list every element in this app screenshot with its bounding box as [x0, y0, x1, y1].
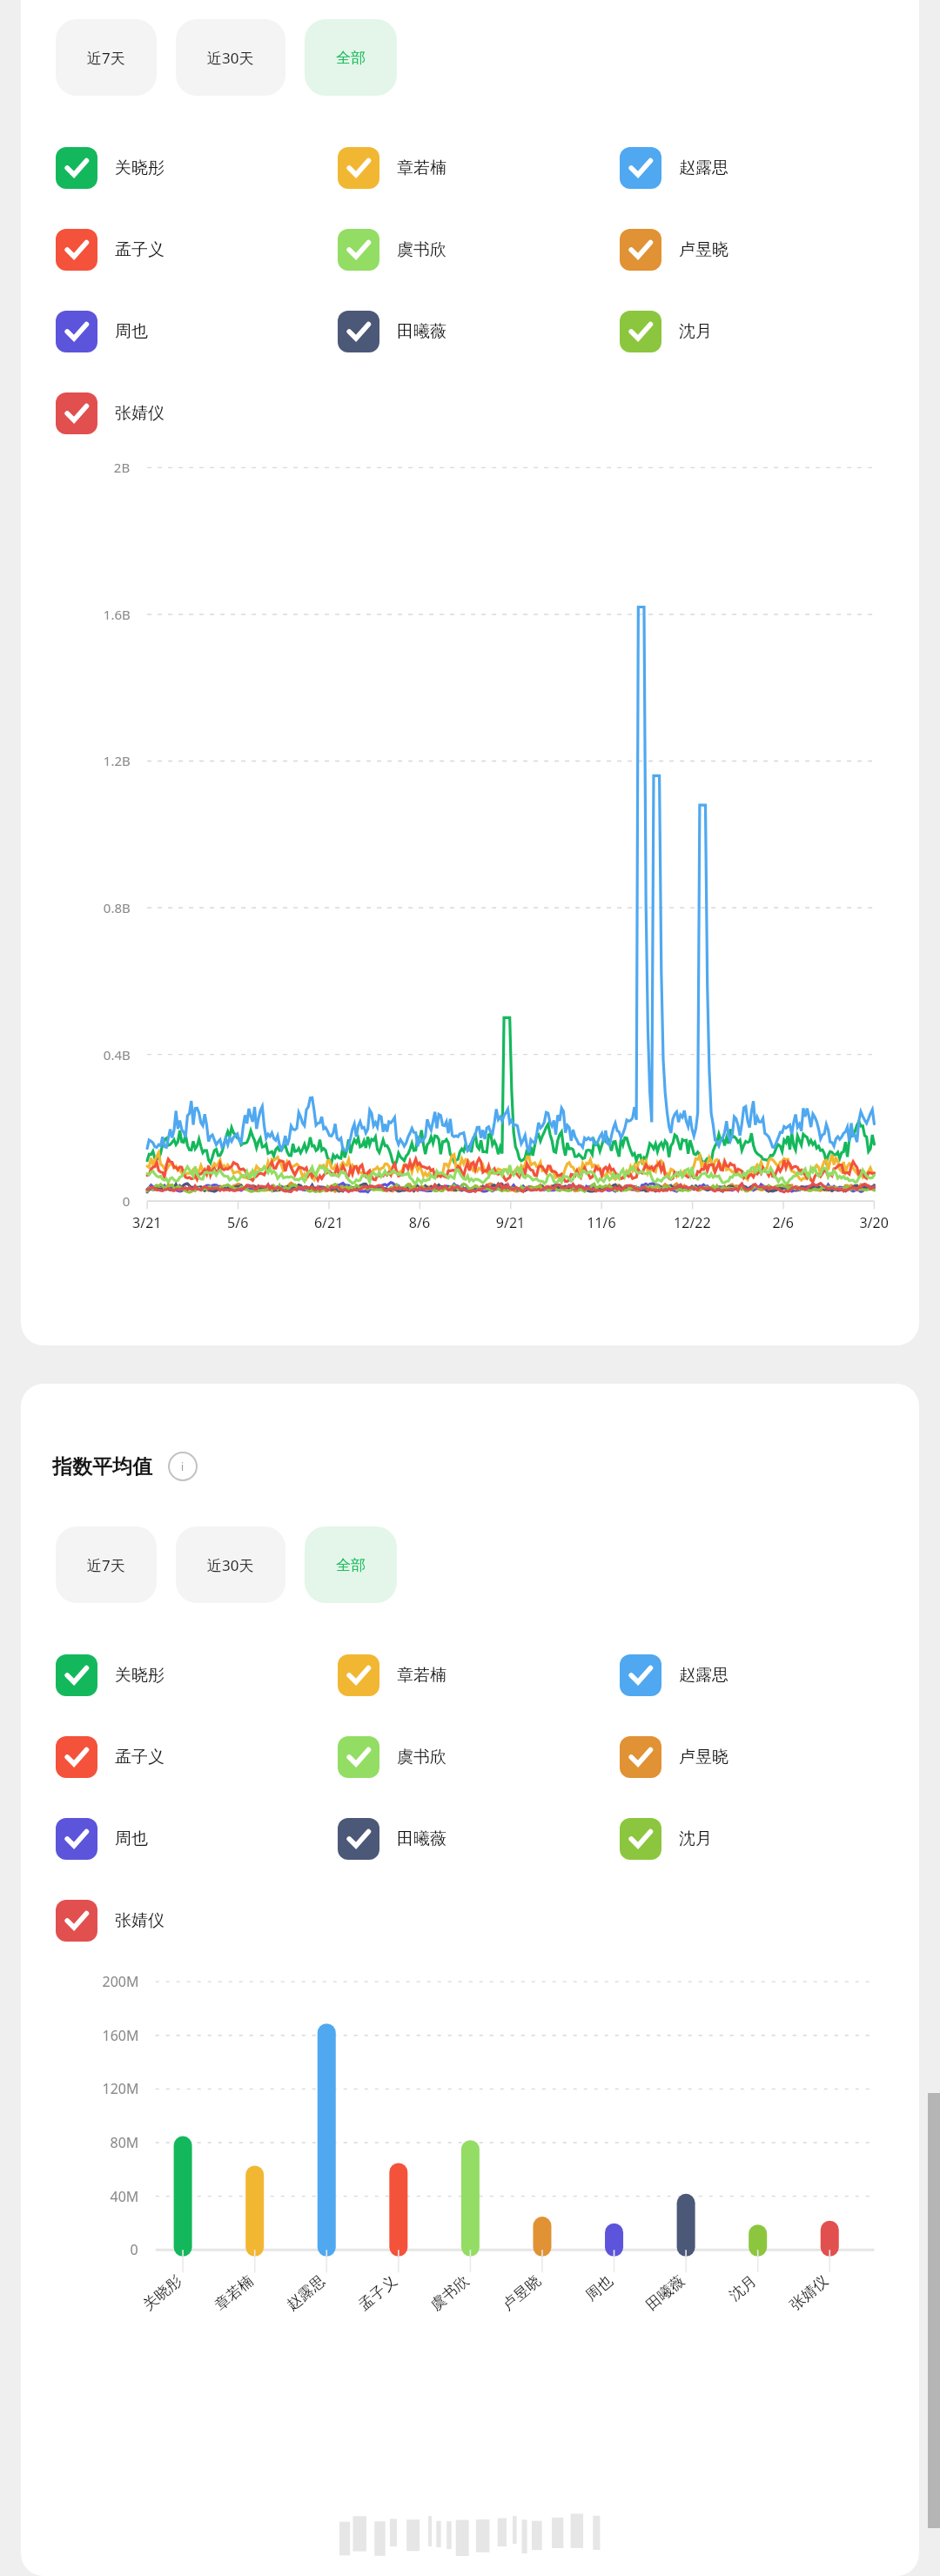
button[interactable]: 卢昱晓 [620, 229, 728, 271]
button[interactable]: 赵露思 [620, 147, 728, 189]
button[interactable]: 赵露思 [620, 1654, 728, 1696]
staticText: 沈月 [679, 321, 712, 342]
staticText: i [181, 1459, 185, 1473]
staticText: 张婧仪 [115, 1910, 164, 1931]
button[interactable]: 卢昱晓 [620, 1736, 728, 1778]
button[interactable]: 孟子义 [56, 229, 164, 271]
button[interactable]: 说明 [168, 1452, 198, 1481]
staticText: 关晓彤 [115, 1665, 164, 1686]
button[interactable]: 近30天 [176, 1526, 285, 1603]
button[interactable]: 全部 [305, 19, 397, 96]
staticText: 赵露思 [679, 158, 728, 178]
staticText: 赵露思 [679, 1665, 728, 1686]
button[interactable]: 章若楠 [338, 1654, 446, 1696]
staticText: 全部 [336, 49, 366, 67]
button[interactable]: 虞书欣 [338, 229, 446, 271]
staticText: 虞书欣 [397, 239, 446, 260]
button[interactable]: 周也 [56, 311, 148, 352]
staticText: 卢昱晓 [679, 1747, 728, 1768]
button[interactable]: 田曦薇 [338, 311, 446, 352]
staticText: 近30天 [207, 48, 254, 68]
button[interactable]: 全部 [305, 1526, 397, 1603]
staticText: 孟子义 [115, 239, 164, 260]
staticText: 周也 [115, 1828, 148, 1849]
button[interactable]: 孟子义 [56, 1736, 164, 1778]
staticText: 虞书欣 [397, 1747, 446, 1768]
staticText: 张婧仪 [115, 403, 164, 424]
staticText: 全部 [336, 1556, 366, 1574]
staticText: 章若楠 [397, 1665, 446, 1686]
button[interactable]: 虞书欣 [338, 1736, 446, 1778]
staticText: 指数平均值 [52, 1454, 152, 1479]
button[interactable]: 沈月 [620, 1818, 712, 1860]
staticText: 近30天 [207, 1555, 254, 1575]
staticText: 近7天 [87, 48, 125, 68]
button[interactable]: 近7天 [56, 1526, 157, 1603]
button[interactable]: 张婧仪 [56, 1900, 164, 1942]
staticText: 章若楠 [397, 158, 446, 178]
button[interactable]: 近7天 [56, 19, 157, 96]
button[interactable]: 关晓彤 [56, 1654, 164, 1696]
button[interactable]: 章若楠 [338, 147, 446, 189]
staticText: 近7天 [87, 1555, 125, 1575]
button[interactable]: 田曦薇 [338, 1818, 446, 1860]
button[interactable]: 张婧仪 [56, 392, 164, 434]
button[interactable]: 沈月 [620, 311, 712, 352]
button[interactable]: 近30天 [176, 19, 285, 96]
button[interactable]: 关晓彤 [56, 147, 164, 189]
staticText: 沈月 [679, 1828, 712, 1849]
staticText: 孟子义 [115, 1747, 164, 1768]
staticText: 田曦薇 [397, 321, 446, 342]
staticText: 关晓彤 [115, 158, 164, 178]
button[interactable]: 周也 [56, 1818, 148, 1860]
staticText: 周也 [115, 321, 148, 342]
staticText: 卢昱晓 [679, 239, 728, 260]
staticText: 田曦薇 [397, 1828, 446, 1849]
